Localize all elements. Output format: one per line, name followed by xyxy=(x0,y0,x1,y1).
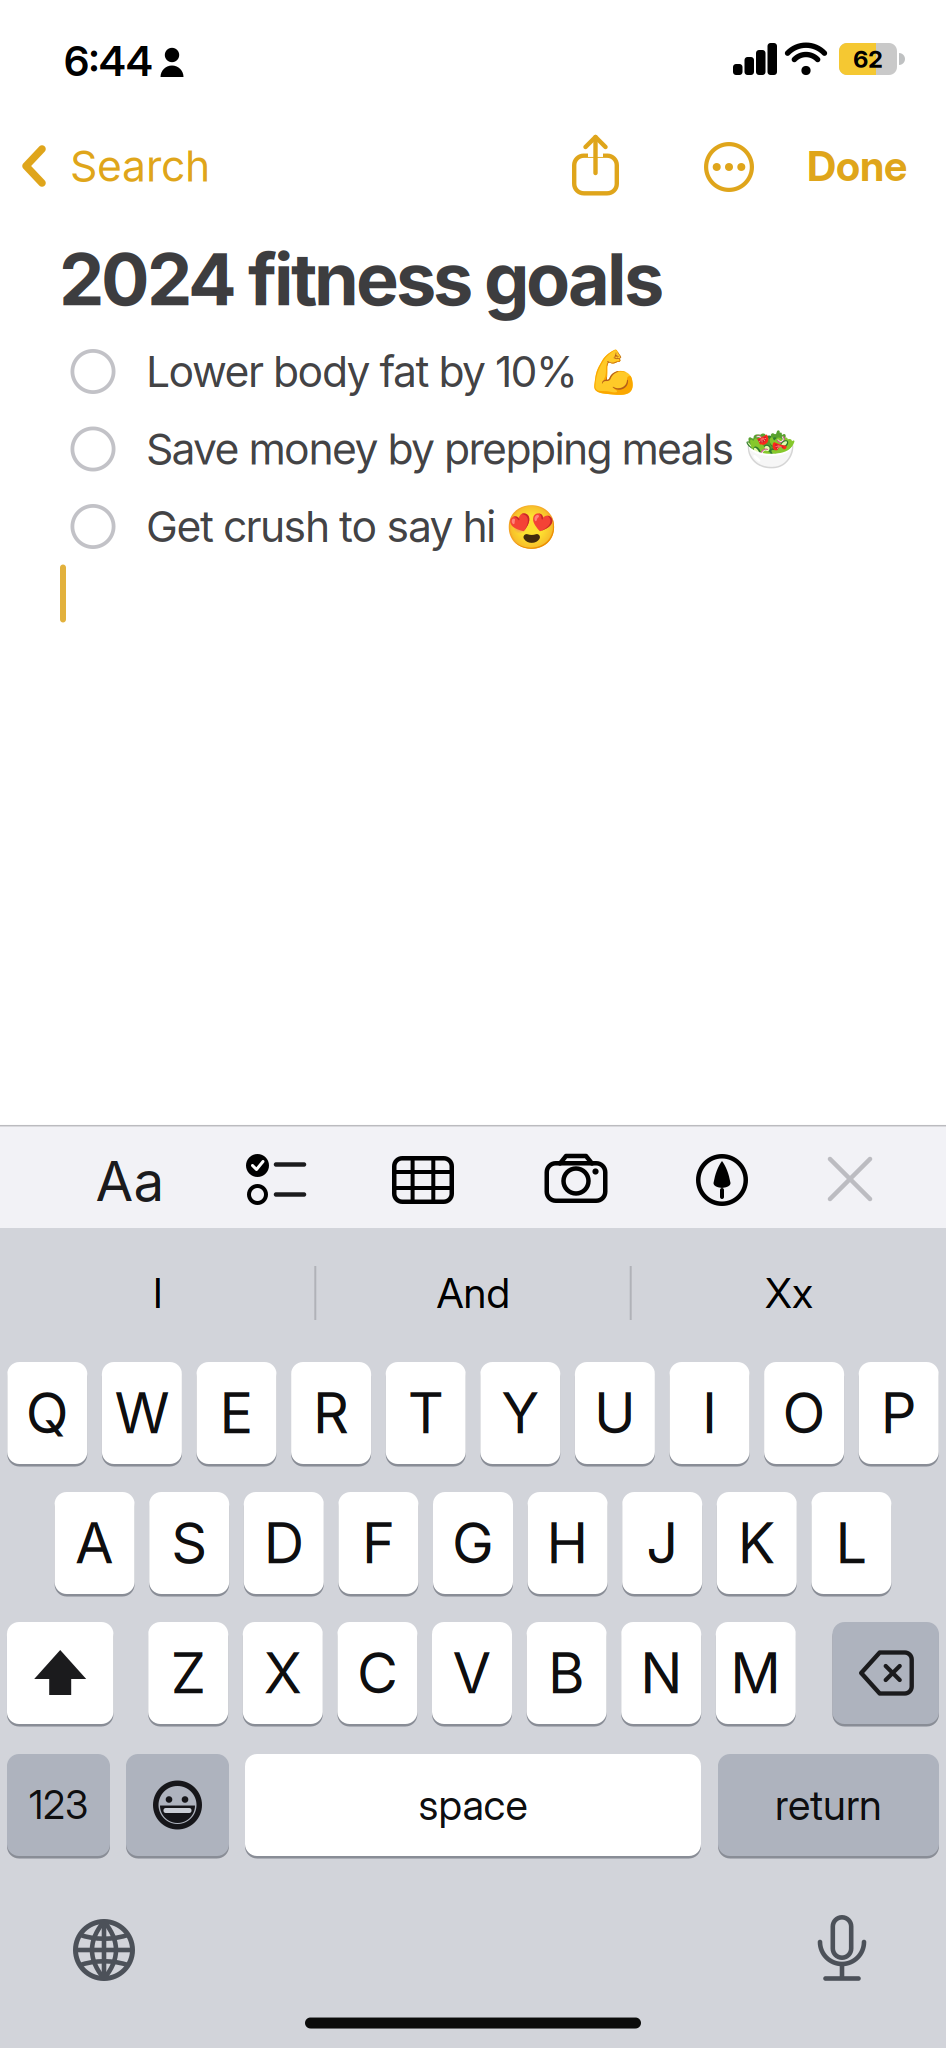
staticText: H xyxy=(547,1510,589,1576)
staticText: V xyxy=(452,1640,491,1706)
button[interactable]: E xyxy=(196,1362,276,1464)
staticText: R xyxy=(313,1380,349,1446)
button[interactable]: L xyxy=(811,1492,891,1594)
button[interactable]: And xyxy=(333,1255,613,1331)
button[interactable]: Aa xyxy=(95,1149,164,1213)
button[interactable] xyxy=(704,142,754,192)
button[interactable]: T xyxy=(386,1362,466,1464)
staticText: Lower body fat by 10% 💪 xyxy=(146,346,640,397)
staticText: D xyxy=(264,1510,304,1576)
button[interactable]: J xyxy=(622,1492,702,1594)
staticText: N xyxy=(640,1640,682,1706)
staticText: G xyxy=(452,1510,494,1576)
button[interactable] xyxy=(696,1154,748,1206)
button[interactable] xyxy=(70,426,115,471)
staticText: X xyxy=(264,1640,302,1706)
button[interactable] xyxy=(392,1156,454,1204)
staticText: C xyxy=(357,1640,398,1706)
staticText: Done xyxy=(807,142,907,190)
button[interactable]: space xyxy=(245,1754,701,1856)
staticText: J xyxy=(646,1510,678,1576)
button[interactable]: W xyxy=(102,1362,182,1464)
staticText: O xyxy=(783,1380,826,1446)
button[interactable]: V xyxy=(432,1622,512,1724)
staticText: 123 xyxy=(29,1782,88,1828)
staticText: P xyxy=(881,1380,917,1446)
button[interactable]: Q xyxy=(7,1362,87,1464)
button[interactable]: Y xyxy=(480,1362,560,1464)
button[interactable] xyxy=(246,1157,308,1203)
button[interactable] xyxy=(828,1157,872,1201)
staticText: E xyxy=(219,1380,253,1446)
staticText: S xyxy=(171,1510,207,1576)
button[interactable]: 123 xyxy=(7,1754,110,1856)
staticText: T xyxy=(408,1380,444,1446)
staticText: L xyxy=(835,1510,867,1576)
button[interactable]: M xyxy=(716,1622,796,1724)
button[interactable]: Done xyxy=(807,142,907,190)
button[interactable]: return xyxy=(718,1754,939,1856)
staticText: Xx xyxy=(765,1269,813,1317)
staticText: A xyxy=(75,1510,114,1576)
button[interactable] xyxy=(570,134,620,198)
button[interactable] xyxy=(7,1622,113,1724)
button[interactable]: D xyxy=(244,1492,324,1594)
staticText: 6:44 xyxy=(64,37,153,85)
button[interactable]: Z xyxy=(148,1622,228,1724)
button[interactable]: Search xyxy=(22,141,262,191)
staticText: Aa xyxy=(95,1149,164,1213)
staticText: 2024 fitness goals xyxy=(59,236,664,321)
staticText: F xyxy=(362,1510,395,1576)
button[interactable]: A xyxy=(55,1492,135,1594)
staticText: 62 xyxy=(853,45,883,73)
button[interactable]: I xyxy=(18,1255,298,1331)
button[interactable]: B xyxy=(527,1622,607,1724)
staticText: space xyxy=(418,1781,527,1829)
staticText: Z xyxy=(171,1640,206,1706)
button[interactable]: G xyxy=(433,1492,513,1594)
staticText: return xyxy=(775,1781,882,1829)
button[interactable] xyxy=(70,349,115,394)
staticText: Q xyxy=(26,1380,69,1446)
button[interactable]: Xx xyxy=(649,1255,929,1331)
staticText: Y xyxy=(501,1380,539,1446)
button[interactable] xyxy=(832,1622,939,1724)
staticText: B xyxy=(548,1640,585,1706)
button[interactable]: O xyxy=(764,1362,844,1464)
staticText: M xyxy=(730,1640,781,1706)
staticText: And xyxy=(436,1269,509,1317)
button[interactable]: F xyxy=(338,1492,418,1594)
button[interactable]: H xyxy=(528,1492,608,1594)
staticText: Search xyxy=(70,141,210,191)
button[interactable]: N xyxy=(621,1622,701,1724)
staticText: K xyxy=(738,1510,776,1576)
button[interactable]: X xyxy=(243,1622,323,1724)
staticText: I xyxy=(702,1380,717,1446)
staticText: Save money by prepping meals 🥗 xyxy=(146,424,796,474)
button[interactable]: P xyxy=(859,1362,939,1464)
button[interactable]: U xyxy=(575,1362,655,1464)
button[interactable] xyxy=(544,1154,608,1204)
staticText: Get crush to say hi 😍 xyxy=(146,501,558,552)
button[interactable]: S xyxy=(149,1492,229,1594)
staticText: I xyxy=(153,1269,163,1317)
button[interactable]: C xyxy=(337,1622,417,1724)
staticText: U xyxy=(594,1380,636,1446)
button[interactable]: K xyxy=(717,1492,797,1594)
staticText: W xyxy=(114,1380,169,1446)
button[interactable] xyxy=(126,1754,229,1856)
button[interactable] xyxy=(70,504,115,549)
button[interactable]: R xyxy=(291,1362,371,1464)
button[interactable]: I xyxy=(669,1362,749,1464)
button[interactable] xyxy=(72,1918,136,1982)
button[interactable] xyxy=(820,1913,864,1983)
